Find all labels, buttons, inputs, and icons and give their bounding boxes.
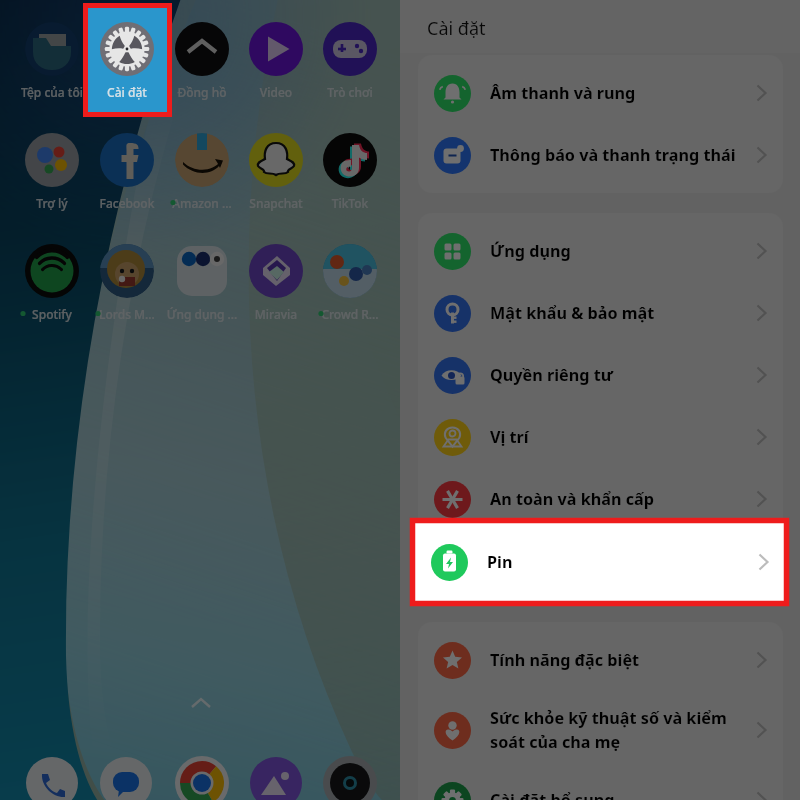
staticText: Quyền riêng tư — [490, 364, 747, 386]
button[interactable]: Lords M... — [90, 241, 164, 327]
button[interactable]: Đồng hồ — [165, 19, 239, 105]
staticText: Vị trí — [490, 426, 747, 448]
staticText: Cài đặt — [90, 84, 164, 100]
staticText: Pin — [487, 551, 749, 573]
staticText: Thông báo và thanh trạng thái — [490, 144, 747, 166]
button[interactable]: Sức khỏe kỹ thuật số và kiểm soát của ch… — [418, 691, 783, 769]
button[interactable]: Thông báo và thanh trạng thái — [418, 124, 783, 186]
button[interactable]: Trợ lý — [15, 130, 89, 216]
button[interactable]: Quyền riêng tư — [418, 344, 783, 406]
button[interactable]: Âm thanh và rung — [418, 62, 783, 124]
button[interactable]: Ứng dụng ... — [165, 241, 239, 327]
staticText: Facebook — [90, 195, 164, 211]
button[interactable]: dock app — [175, 756, 229, 800]
staticText: Mật khẩu & bảo mật — [490, 302, 747, 324]
button[interactable]: Amazon ... — [165, 130, 239, 216]
staticText: Tính năng đặc biệt — [490, 649, 747, 671]
button[interactable]: Pin — [418, 530, 783, 592]
button[interactable]: Spotify — [15, 241, 89, 327]
staticText: Tệp của tôi — [15, 84, 89, 100]
staticText: Trợ lý — [15, 195, 89, 211]
button[interactable]: Cài đặt bổ sung — [418, 769, 783, 800]
staticText: Đồng hồ — [165, 84, 239, 100]
button[interactable]: Mật khẩu & bảo mật — [418, 282, 783, 344]
button[interactable]: TikTok — [313, 130, 387, 216]
staticText: Âm thanh và rung — [490, 82, 747, 104]
button[interactable]: Cài đặt — [90, 19, 164, 105]
button[interactable]: Trò chơi — [313, 19, 387, 105]
button[interactable]: dock app — [249, 756, 303, 800]
button[interactable]: Tính năng đặc biệt — [418, 629, 783, 691]
button[interactable]: Ứng dụng — [418, 220, 783, 282]
staticText: Sức khỏe kỹ thuật số và kiểm soát của ch… — [490, 707, 747, 753]
button[interactable]: Snapchat — [239, 130, 313, 216]
staticText: Trò chơi — [313, 84, 387, 100]
button[interactable]: dock app — [323, 756, 377, 800]
button[interactable]: Tệp của tôi — [15, 19, 89, 105]
button[interactable]: Facebook — [90, 130, 164, 216]
staticText: Miravia — [239, 306, 313, 322]
button[interactable]: Vị trí — [418, 406, 783, 468]
button[interactable]: Crowd R... — [313, 241, 387, 327]
staticText: Spotify — [15, 306, 89, 322]
button[interactable]: dock app — [25, 756, 79, 800]
staticText: An toàn và khẩn cấp — [490, 488, 747, 510]
staticText: Lords M... — [90, 306, 164, 322]
staticText: Cài đặt bổ sung — [490, 789, 747, 800]
staticText: Video — [239, 84, 313, 100]
button[interactable]: Cài đặt highlighted — [88, 8, 167, 112]
staticText: Amazon ... — [165, 195, 239, 211]
staticText: Ứng dụng — [490, 240, 747, 262]
staticText: Snapchat — [239, 195, 313, 211]
button[interactable]: Miravia — [239, 241, 313, 327]
button[interactable]: Pin — [415, 531, 785, 593]
button[interactable]: dock app — [99, 756, 153, 800]
staticText: Ứng dụng ... — [165, 306, 239, 322]
staticText: TikTok — [313, 195, 387, 211]
staticText: Crowd R... — [313, 306, 387, 322]
staticText: Cài đặt — [427, 16, 486, 41]
button[interactable]: An toàn và khẩn cấp — [418, 468, 783, 530]
staticText: Pin — [490, 550, 747, 572]
button[interactable]: Video — [239, 19, 313, 105]
